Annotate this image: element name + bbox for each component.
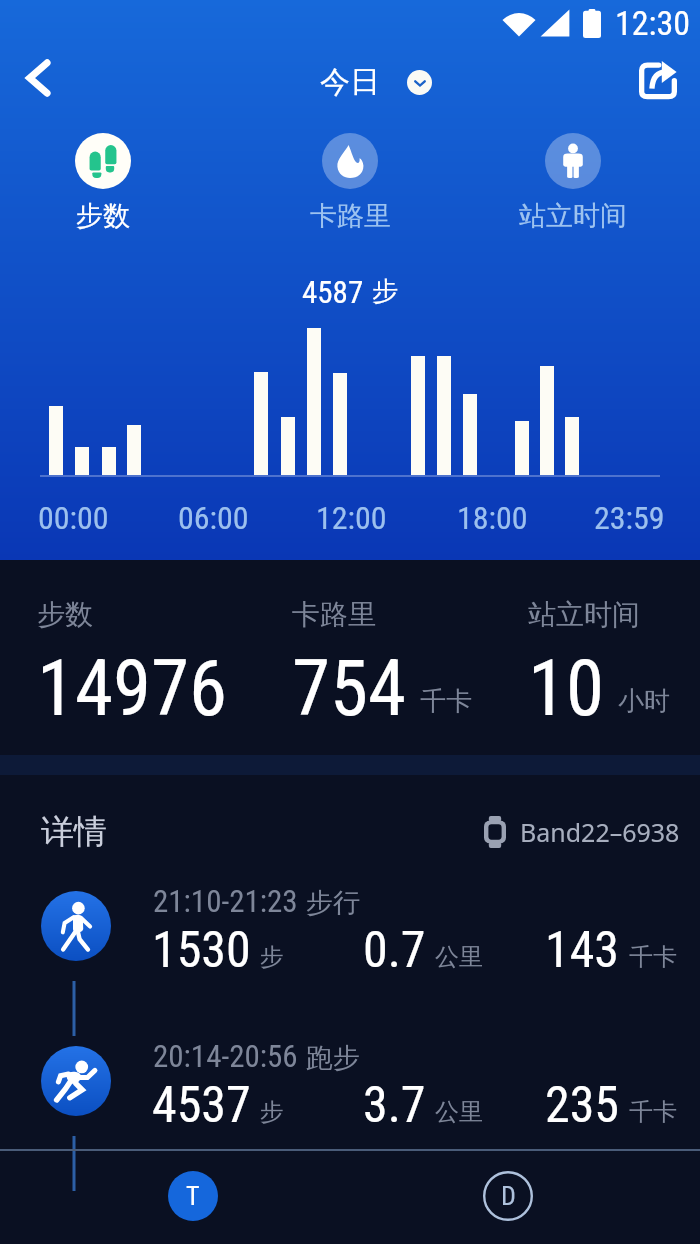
staticText: 公里 bbox=[435, 1097, 483, 1127]
staticText: 3.7 bbox=[363, 1076, 426, 1135]
staticText: 754 bbox=[292, 644, 407, 734]
staticText: 18:00 bbox=[457, 499, 528, 537]
staticText: 1530 bbox=[152, 921, 251, 980]
staticText: 步 bbox=[372, 275, 398, 308]
button[interactable]: 今日 bbox=[320, 63, 432, 101]
staticText: 12:00 bbox=[316, 499, 387, 537]
staticText: 10 bbox=[528, 644, 605, 734]
staticText: T bbox=[186, 1181, 200, 1211]
staticText: 235 bbox=[545, 1076, 620, 1135]
staticText: 12:30 bbox=[615, 3, 691, 43]
staticText: 今日 bbox=[320, 63, 380, 101]
staticText: 千卡 bbox=[629, 942, 677, 972]
button[interactable]: Data bbox=[459, 1147, 557, 1244]
staticText: 步行 bbox=[306, 886, 360, 920]
staticText: 公里 bbox=[435, 942, 483, 972]
staticText: 23:59 bbox=[594, 499, 665, 537]
staticText: 步 bbox=[260, 942, 284, 972]
button[interactable]: 步数 bbox=[33, 133, 173, 233]
staticText: 卡路里 bbox=[292, 597, 376, 632]
button[interactable]: 20:14-20:56 bbox=[0, 1030, 700, 1185]
staticText: 14976 bbox=[37, 644, 228, 734]
button[interactable]: 站立时间 bbox=[503, 133, 643, 233]
button[interactable]: Share bbox=[628, 48, 688, 108]
staticText: 步数 bbox=[76, 199, 130, 233]
staticText: 21:10-21:23 bbox=[153, 883, 298, 919]
button[interactable]: Today bbox=[144, 1147, 242, 1244]
staticText: 0.7 bbox=[363, 921, 426, 980]
staticText: 站立时间 bbox=[519, 199, 627, 233]
staticText: 千卡 bbox=[629, 1097, 677, 1127]
staticText: 20:14-20:56 bbox=[153, 1038, 298, 1074]
staticText: 步 bbox=[260, 1097, 284, 1127]
button[interactable]: 卡路里 bbox=[280, 133, 420, 233]
button[interactable]: Back bbox=[8, 48, 68, 108]
staticText: Band22–6938 bbox=[520, 815, 680, 849]
staticText: 143 bbox=[545, 921, 620, 980]
staticText: 步数 bbox=[37, 597, 93, 632]
staticText: 06:00 bbox=[178, 499, 249, 537]
staticText: 4587 bbox=[302, 274, 364, 310]
staticText: 站立时间 bbox=[528, 597, 640, 632]
staticText: 4537 bbox=[152, 1076, 251, 1135]
staticText: 小时 bbox=[618, 685, 670, 718]
staticText: 00:00 bbox=[38, 499, 109, 537]
staticText: 跑步 bbox=[306, 1041, 360, 1075]
staticText: 详情 bbox=[41, 811, 107, 853]
staticText: 卡路里 bbox=[310, 199, 391, 233]
staticText: 千卡 bbox=[420, 685, 472, 718]
staticText: D bbox=[501, 1181, 516, 1211]
button[interactable]: 21:10-21:23 bbox=[0, 875, 700, 1030]
